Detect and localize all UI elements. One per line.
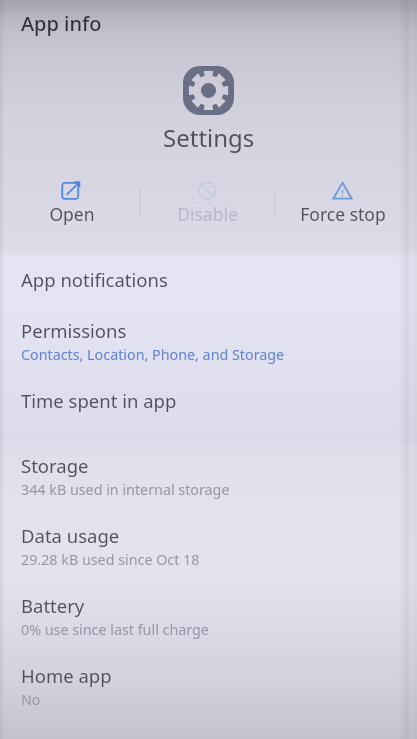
staticText: 0% use since last full charge bbox=[21, 620, 209, 639]
button[interactable]: App notifications bbox=[0, 260, 417, 312]
staticText: Open bbox=[49, 202, 95, 226]
staticText: No bbox=[21, 690, 41, 709]
staticText: Disable bbox=[177, 202, 238, 226]
staticText: App info bbox=[21, 10, 102, 37]
staticText: 29.28 kB used since Oct 18 bbox=[21, 550, 200, 569]
other: Disable bbox=[197, 180, 218, 201]
staticText: App notifications bbox=[21, 267, 168, 292]
staticText: Settings bbox=[163, 121, 255, 154]
other: Open bbox=[61, 180, 82, 201]
button[interactable]: Storage bbox=[0, 450, 417, 520]
staticText: 344 kB used in internal storage bbox=[21, 480, 230, 499]
button[interactable]: Home app bbox=[0, 660, 417, 730]
staticText: Home app bbox=[21, 663, 112, 688]
button[interactable]: Permissions bbox=[0, 312, 417, 381]
staticText: Force stop bbox=[300, 202, 386, 226]
staticText: Time spent in app bbox=[21, 388, 177, 413]
button[interactable]: Force stop bbox=[273, 180, 412, 226]
staticText: Contacts, Location, Phone, and Storage bbox=[21, 345, 285, 364]
button[interactable]: Battery bbox=[0, 590, 417, 660]
staticText: Storage bbox=[21, 453, 89, 478]
button[interactable]: Time spent in app bbox=[0, 381, 417, 450]
staticText: Data usage bbox=[21, 523, 120, 548]
staticText: Permissions bbox=[21, 318, 127, 343]
other: Force stop bbox=[332, 180, 353, 201]
staticText: Battery bbox=[21, 593, 85, 618]
button[interactable]: Data usage bbox=[0, 520, 417, 590]
button[interactable]: Open bbox=[2, 180, 141, 226]
button[interactable]: Disable bbox=[138, 180, 277, 226]
